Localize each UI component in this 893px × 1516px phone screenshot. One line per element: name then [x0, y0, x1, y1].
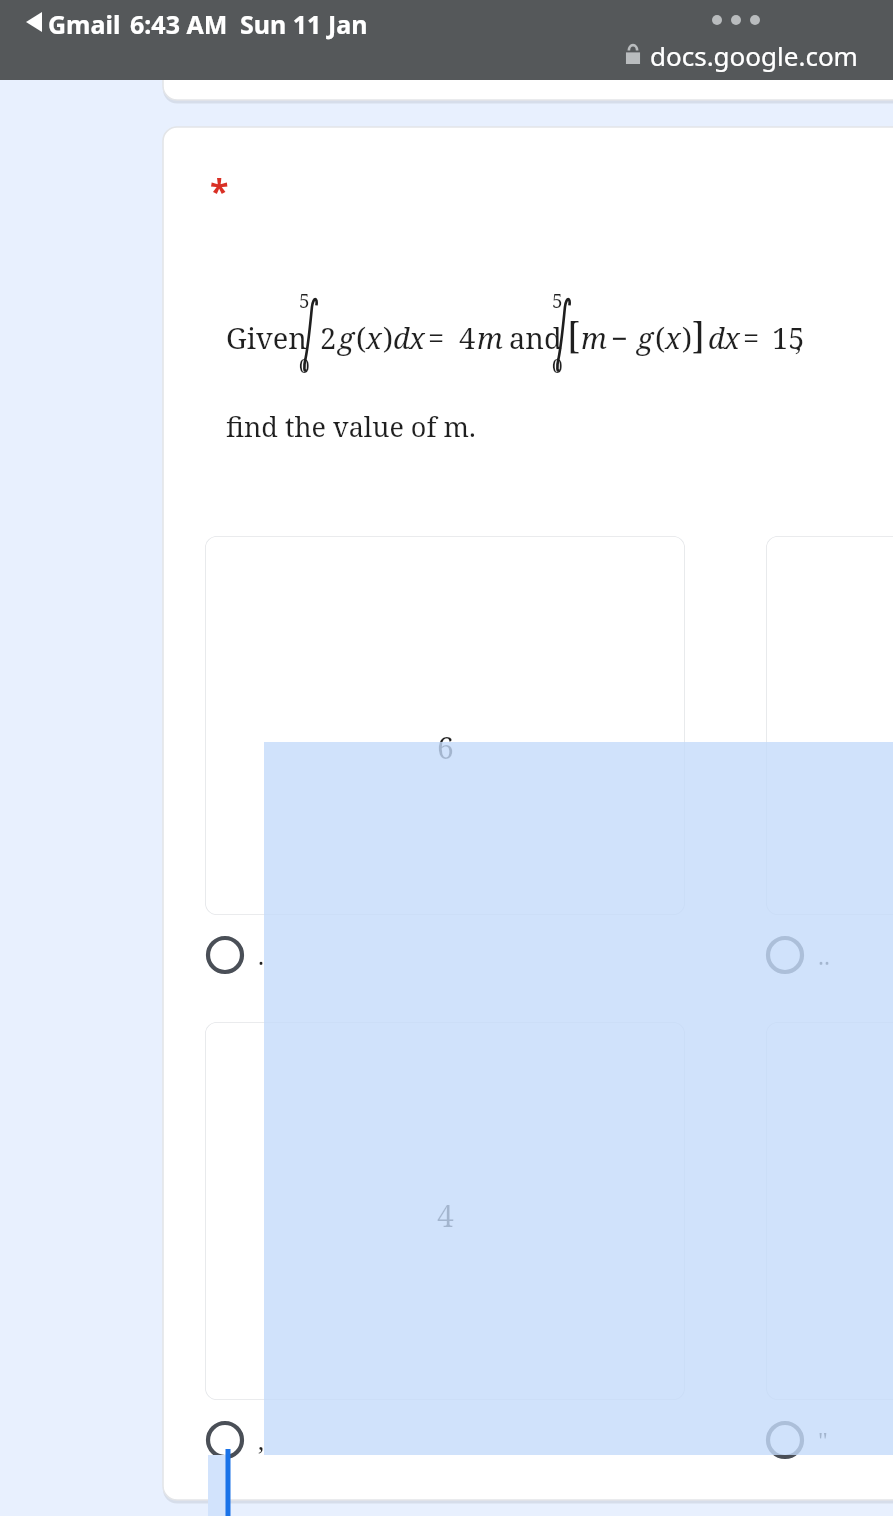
staticText: [ [567, 311, 580, 360]
staticText: 5 [299, 288, 310, 314]
staticText: Given [226, 318, 307, 357]
staticText: . [258, 939, 264, 972]
staticText: and [509, 318, 562, 357]
staticText: m [477, 318, 503, 357]
staticText: = [428, 318, 445, 357]
button[interactable]: docs.google.com [650, 38, 858, 73]
staticText: d [708, 318, 725, 357]
staticText: x [366, 318, 382, 357]
staticText: x [409, 318, 425, 357]
staticText: ) [682, 318, 693, 357]
staticText: ] [692, 311, 705, 360]
staticText: , [795, 322, 802, 357]
staticText: find the value of m. [226, 408, 476, 445]
staticText: − [611, 318, 628, 357]
staticText: x [724, 318, 740, 357]
staticText: 15 [772, 318, 805, 357]
staticText: , [258, 1424, 264, 1457]
staticText: 4 [459, 318, 476, 357]
staticText: Gmail [48, 7, 121, 41]
staticText: docs.google.com [650, 38, 858, 73]
button[interactable]: 6 [205, 536, 685, 915]
button[interactable]: Option 4 [201, 1416, 249, 1464]
staticText: " [818, 1424, 828, 1457]
staticText: x [665, 318, 681, 357]
other: Tabs [712, 14, 760, 26]
staticText: d [393, 318, 410, 357]
staticText: m [581, 318, 607, 357]
staticText: g [338, 318, 355, 357]
staticText: 0 [552, 353, 563, 379]
staticText: ( [356, 318, 367, 357]
button[interactable] [766, 536, 893, 915]
button[interactable]: Option second column [761, 931, 809, 979]
other: Back to Gmail [26, 12, 42, 32]
button[interactable]: 4 [205, 1022, 685, 1400]
staticText: Sun 11 Jan [240, 7, 368, 41]
button[interactable]: Option fourth [761, 1416, 809, 1464]
button[interactable]: Option 6 [201, 931, 249, 979]
staticText: = [743, 318, 760, 357]
staticText: ( [655, 318, 666, 357]
staticText: .. [818, 939, 830, 972]
staticText: 6:43 AM [130, 7, 228, 41]
staticText: * [210, 168, 229, 214]
staticText: 6 [437, 727, 454, 768]
staticText: 5 [552, 288, 563, 314]
staticText: 4 [437, 1195, 454, 1236]
staticText: 2 [320, 318, 337, 357]
staticText: g [637, 318, 654, 357]
staticText: 0 [299, 353, 310, 379]
staticText: ) [383, 318, 394, 357]
